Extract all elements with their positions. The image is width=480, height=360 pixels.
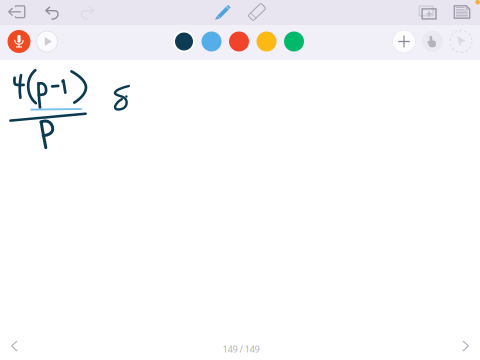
button[interactable]: Insert — [392, 30, 415, 53]
button[interactable]: Black ink colour — [173, 30, 195, 52]
button[interactable]: Play recording — [36, 31, 57, 52]
button[interactable]: Blue ink colour — [200, 30, 222, 52]
button[interactable]: All pages — [447, 0, 477, 24]
staticText: 149 / 149 — [222, 343, 259, 355]
button[interactable]: Yellow ink colour — [255, 30, 277, 52]
button[interactable]: Next page — [452, 335, 478, 357]
button[interactable]: Red ink colour — [228, 30, 250, 52]
button[interactable]: Lasso select — [449, 29, 473, 53]
button[interactable]: Green ink colour — [283, 30, 305, 52]
button[interactable]: Record audio — [7, 30, 30, 53]
button[interactable]: Undo — [38, 0, 68, 24]
button[interactable]: Close document — [1, 0, 31, 24]
button[interactable]: Eraser tool — [242, 0, 272, 24]
button[interactable]: Previous page — [1, 335, 27, 357]
button[interactable]: Add page — [412, 0, 442, 24]
button[interactable]: Pen tool — [207, 0, 237, 24]
button[interactable]: Pan — [422, 31, 443, 52]
